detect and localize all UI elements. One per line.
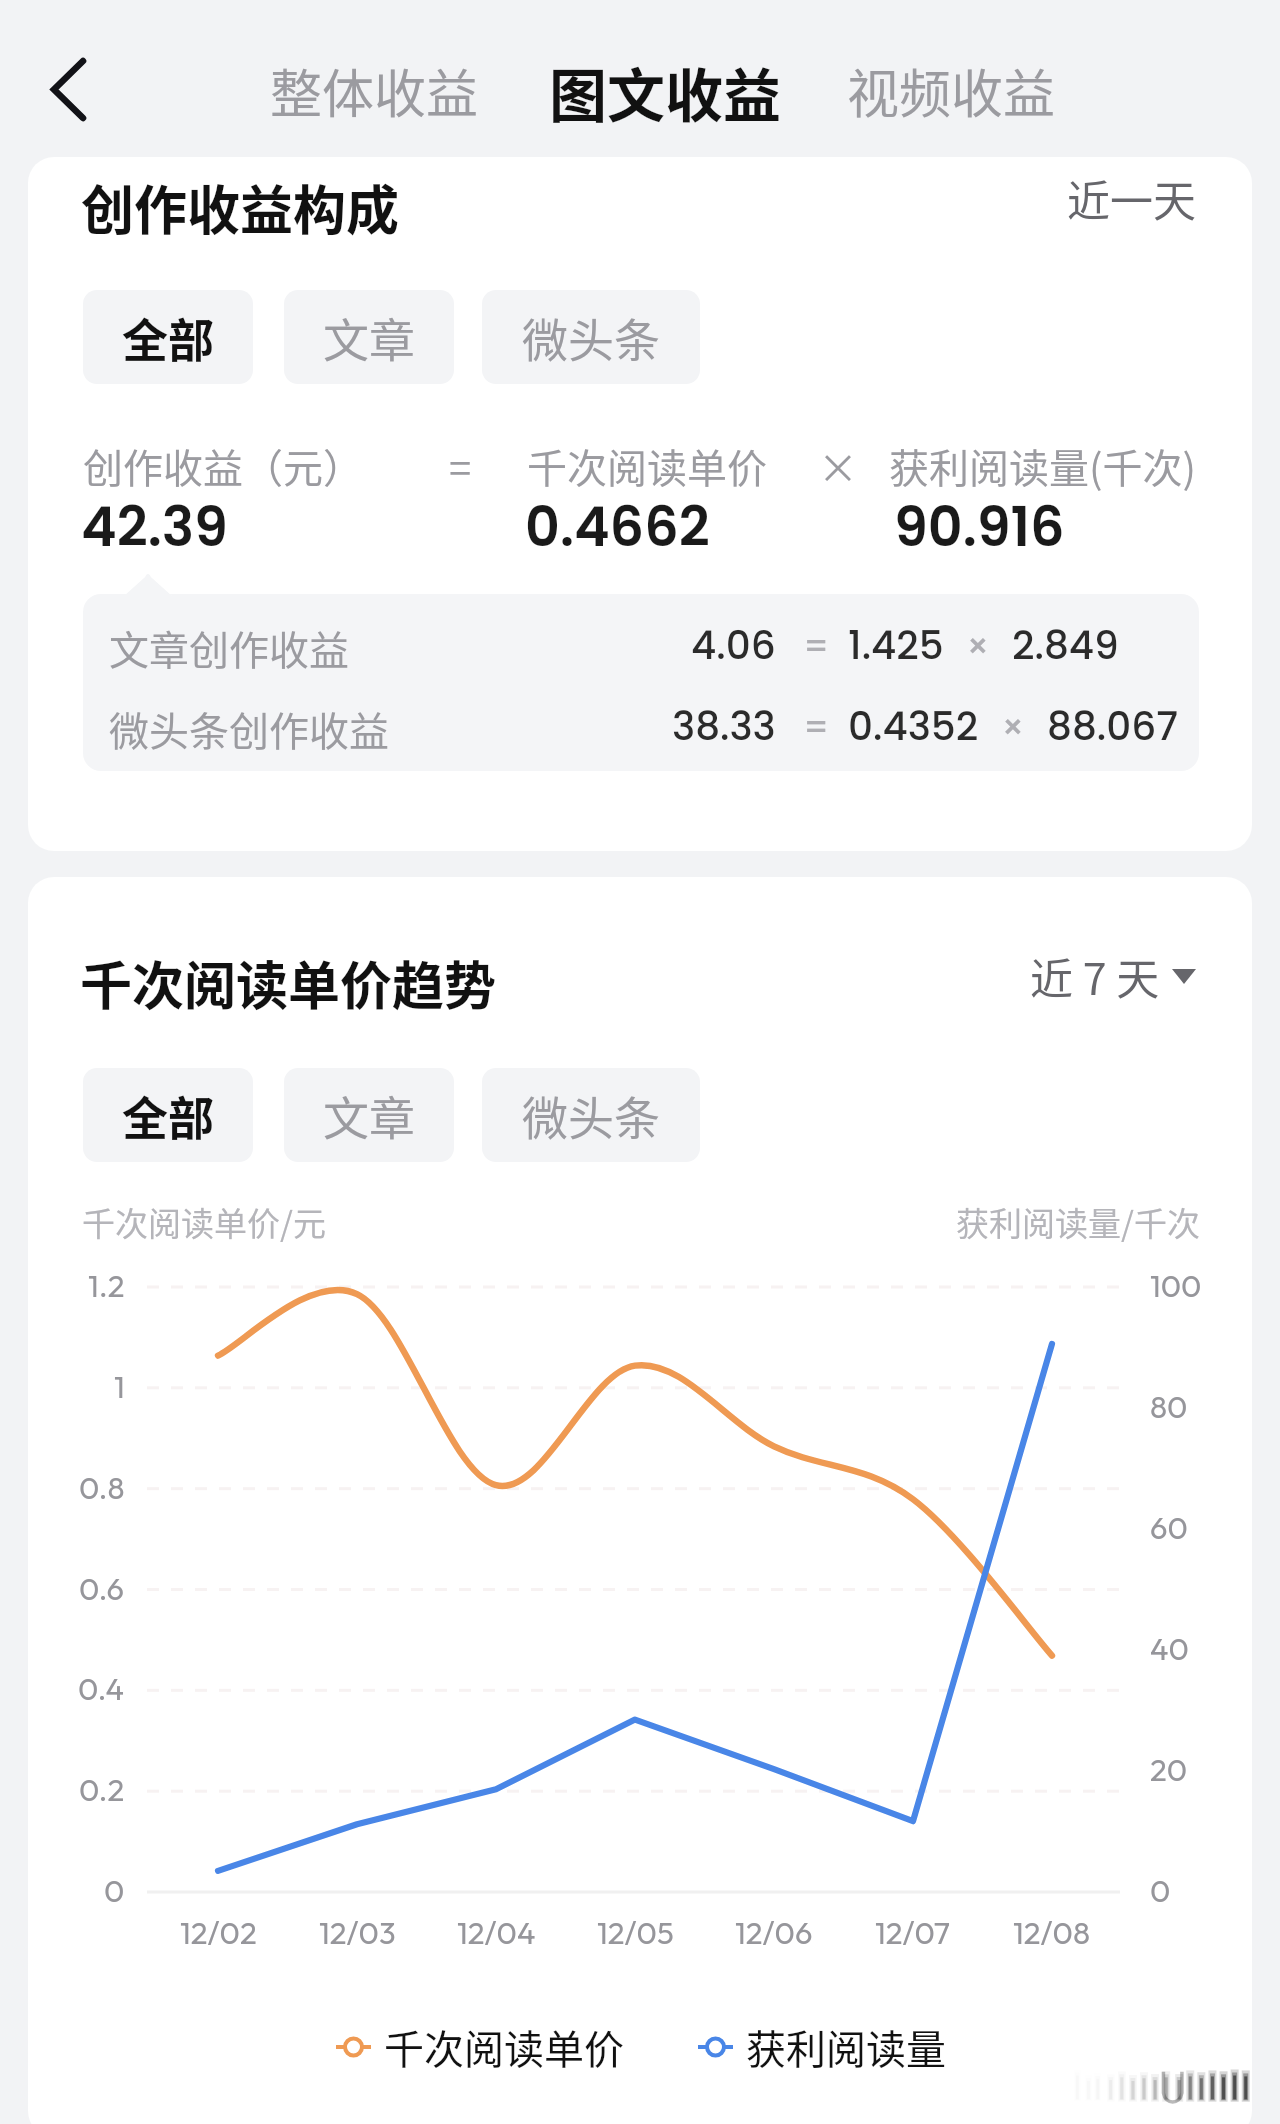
staticText: 视频收益 — [847, 53, 1056, 128]
staticText: = — [803, 703, 830, 751]
staticText: 0.2 — [79, 1770, 125, 1809]
staticText: 微头条 — [522, 1082, 660, 1149]
staticText: 60 — [1150, 1508, 1188, 1547]
staticText: 千次阅读单价趋势 — [80, 945, 497, 1020]
staticText: 获利阅读量 — [746, 2018, 946, 2076]
staticText: 12/02 — [180, 1913, 257, 1952]
button[interactable]: 整体收益 — [270, 53, 479, 128]
button[interactable]: 全部 — [83, 290, 253, 384]
staticText: 12/08 — [1013, 1913, 1091, 1952]
button[interactable]: 文章 — [284, 1068, 454, 1162]
button[interactable]: Back — [26, 47, 110, 131]
staticText: 0.4352 — [848, 699, 979, 754]
staticText: 千次阅读单价 — [384, 2018, 624, 2076]
staticText: 12/07 — [875, 1913, 951, 1952]
staticText: 90.916 — [894, 489, 1065, 565]
button[interactable]: 微头条 — [482, 1068, 700, 1162]
staticText: 80 — [1150, 1387, 1188, 1426]
staticText: 40 — [1150, 1629, 1189, 1668]
staticText: 全部 — [122, 304, 214, 371]
button[interactable]: 全部 — [83, 1068, 253, 1162]
staticText: = — [449, 437, 472, 495]
staticText: 获利阅读量(千次) — [889, 437, 1197, 495]
staticText: 1.425 — [848, 618, 944, 673]
button[interactable]: 微头条 — [482, 290, 700, 384]
staticText: 12/06 — [735, 1913, 813, 1952]
staticText: 100 — [1150, 1266, 1202, 1305]
staticText: = — [803, 622, 830, 670]
staticText: 整体收益 — [270, 53, 479, 128]
staticText: 千次阅读单价/元 — [82, 1198, 326, 1246]
button[interactable]: 近 7 天 — [1030, 945, 1196, 1007]
staticText: 0 — [1150, 1871, 1171, 1910]
staticText: 文章 — [323, 1082, 415, 1149]
staticText: 20 — [1150, 1750, 1188, 1789]
staticText: 文章创作收益 — [109, 619, 349, 677]
staticText: 1.2 — [88, 1266, 125, 1305]
staticText: × — [966, 622, 990, 670]
staticText: 2.849 — [1012, 618, 1119, 673]
button[interactable]: 图文收益 — [549, 50, 782, 134]
staticText: 微头条 — [522, 304, 660, 371]
staticText: 0.4662 — [525, 489, 710, 565]
staticText: × — [1001, 703, 1025, 751]
staticText: 图文收益 — [549, 50, 782, 134]
staticText: 创作收益构成 — [81, 169, 399, 246]
button[interactable]: 获利阅读量 — [698, 2018, 946, 2076]
staticText: 12/05 — [597, 1913, 674, 1952]
staticText: 创作收益（元） — [83, 437, 363, 495]
staticText: 获利阅读量/千次 — [956, 1198, 1200, 1246]
staticText: 0.4 — [78, 1669, 125, 1708]
staticText: 38.33 — [672, 699, 776, 754]
staticText: 4.06 — [691, 618, 776, 673]
staticText: 全部 — [122, 1082, 214, 1149]
staticText: 1 — [114, 1367, 125, 1406]
staticText: 0.8 — [79, 1468, 125, 1507]
button[interactable]: 千次阅读单价 — [336, 2018, 624, 2076]
staticText: 文章 — [323, 304, 415, 371]
staticText: 12/04 — [457, 1913, 536, 1952]
staticText: 微头条创作收益 — [109, 700, 389, 758]
staticText: 88.067 — [1047, 699, 1179, 754]
button[interactable]: 近一天 — [1067, 167, 1196, 229]
staticText: 0 — [104, 1871, 125, 1910]
staticText: 近一天 — [1067, 167, 1196, 229]
staticText: 0.6 — [79, 1569, 125, 1608]
button[interactable]: 视频收益 — [847, 53, 1056, 128]
staticText: 近 7 天 — [1030, 945, 1160, 1007]
button[interactable]: 文章 — [284, 290, 454, 384]
staticText: × — [818, 437, 858, 495]
staticText: 千次阅读单价 — [527, 437, 767, 495]
staticText: 12/03 — [319, 1913, 396, 1952]
staticText: 42.39 — [81, 489, 228, 565]
